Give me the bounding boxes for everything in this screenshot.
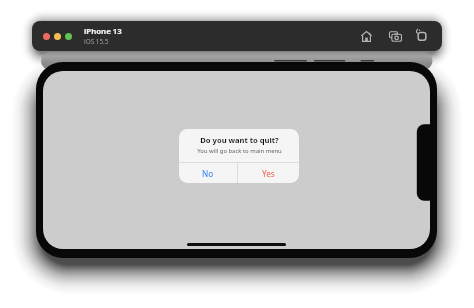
button[interactable] [65, 33, 72, 40]
button[interactable]: Take screenshot [385, 26, 405, 46]
staticText: Yes [262, 168, 275, 179]
staticText: iOS 15.5 [84, 37, 109, 46]
button[interactable]: Rotate device [412, 25, 432, 45]
staticText: No [202, 168, 214, 179]
staticText: You will go back to main menu [197, 147, 282, 155]
button[interactable]: Home [356, 26, 376, 46]
button[interactable] [43, 33, 50, 40]
button[interactable] [54, 33, 61, 40]
button[interactable]: Yes [238, 163, 299, 183]
staticText: iPhone 13 [84, 26, 122, 37]
button[interactable]: No [179, 163, 237, 183]
staticText: Do you want to quit? [200, 135, 279, 145]
